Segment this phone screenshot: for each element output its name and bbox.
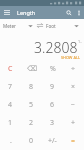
button[interactable]: 6 [42, 96, 63, 114]
button[interactable]: Meter [0, 19, 36, 32]
button[interactable]: More options [74, 6, 84, 19]
staticText: . [10, 136, 12, 146]
staticText: ÷ [71, 64, 76, 74]
staticText: = [71, 136, 76, 146]
staticText: + [71, 118, 76, 128]
button[interactable]: 3 [42, 114, 63, 132]
button[interactable]: ⌫ [21, 60, 42, 78]
button[interactable]: % [42, 60, 63, 78]
staticText: C [8, 64, 13, 74]
staticText: Length [17, 9, 36, 16]
button[interactable]: 8 [21, 78, 42, 96]
staticText: 1.. [78, 39, 82, 44]
button[interactable]: 5 [21, 96, 42, 114]
button[interactable]: = [63, 132, 84, 150]
staticText: % [50, 64, 56, 74]
button[interactable]: + [63, 114, 84, 132]
button[interactable]: ÷ [63, 60, 84, 78]
staticText: 6 [50, 100, 55, 110]
button[interactable]: Foot [44, 19, 84, 32]
button[interactable]: 1 [0, 114, 21, 132]
button[interactable]: SHOW ALL [61, 55, 80, 60]
staticText: SHOW ALL [61, 55, 80, 60]
button[interactable]: Search [63, 6, 74, 19]
button[interactable]: × [63, 78, 84, 96]
button[interactable]: 2 [21, 114, 42, 132]
button[interactable]: Navigation menu [0, 6, 14, 19]
staticText: 4 [8, 100, 13, 110]
button[interactable]: C [0, 60, 21, 78]
button[interactable]: 4 [0, 96, 21, 114]
button[interactable]: +/- [42, 132, 63, 150]
button[interactable]: 7 [0, 78, 21, 96]
staticText: 2 [29, 118, 34, 128]
staticText: 1 [8, 118, 13, 128]
staticText: 3 [50, 118, 55, 128]
button[interactable]: Swap units [36, 19, 44, 32]
staticText: +/- [48, 136, 57, 146]
staticText: 9 [50, 82, 55, 92]
staticText: 3.2808 [34, 38, 78, 57]
staticText: 8 [29, 82, 34, 92]
staticText: 7 [8, 82, 13, 92]
staticText: Meter [3, 23, 16, 29]
button[interactable]: 9 [42, 78, 63, 96]
staticText: Foot [46, 23, 56, 29]
staticText: 5 [29, 100, 34, 110]
button[interactable]: 0 [21, 132, 42, 150]
staticText: ⌫ [27, 65, 37, 73]
staticText: − [71, 100, 76, 110]
staticText: 0 [29, 136, 34, 146]
staticText: × [71, 82, 76, 92]
button[interactable]: − [63, 96, 84, 114]
